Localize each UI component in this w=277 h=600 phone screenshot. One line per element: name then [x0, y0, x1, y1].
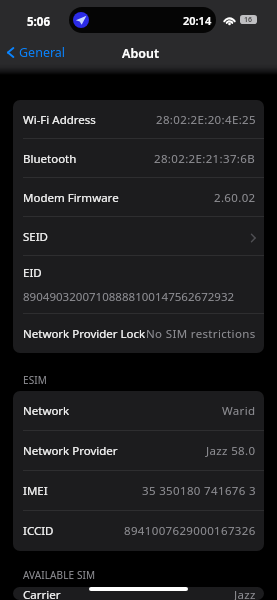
staticText: Modem Firmware	[23, 190, 119, 206]
staticText: 28:02:2E:20:4E:25	[156, 112, 256, 128]
staticText: 5:06	[27, 14, 50, 30]
staticText: 2.60.02	[214, 190, 256, 206]
staticText: Carrier	[23, 587, 61, 600]
button[interactable]: General	[2, 42, 68, 63]
staticText: Wi-Fi Address	[23, 112, 96, 128]
staticText: Network	[23, 403, 70, 419]
staticText: SEID	[23, 229, 49, 245]
button[interactable]: EID	[13, 256, 264, 314]
button[interactable]: Network	[13, 391, 264, 431]
staticText: ESIM	[23, 373, 47, 387]
staticText: Jazz	[234, 587, 256, 600]
button[interactable]: Carrier	[13, 587, 264, 600]
staticText: EID	[23, 265, 42, 281]
button[interactable]: Network Provider Lock	[13, 314, 264, 353]
button[interactable]: Bluetooth	[13, 139, 264, 178]
staticText: 89049032007108888100147562672932	[23, 289, 235, 305]
staticText: Warid	[222, 403, 256, 419]
staticText: 35 350180 741676 3	[142, 483, 256, 499]
staticText: Jazz 58.0	[206, 443, 256, 459]
button[interactable]: Wi-Fi Address	[13, 100, 264, 139]
staticText: No SIM restrictions	[146, 326, 256, 342]
staticText: IMEI	[23, 483, 48, 499]
staticText: 28:02:2E:21:37:6B	[154, 151, 256, 167]
button[interactable]: SEID	[13, 217, 264, 256]
staticText: 20:14	[183, 13, 212, 28]
staticText: Network Provider Lock	[23, 326, 146, 342]
staticText: Bluetooth	[23, 151, 77, 167]
staticText: Network Provider	[23, 443, 118, 459]
staticText: AVAILABLE SIM	[23, 568, 96, 582]
staticText: ICCID	[23, 523, 54, 539]
staticText: 16	[244, 15, 253, 24]
button[interactable]: IMEI	[13, 471, 264, 511]
button[interactable]: Modem Firmware	[13, 178, 264, 217]
staticText: General	[19, 44, 66, 61]
button[interactable]: Network Provider	[13, 431, 264, 471]
button[interactable]: ICCID	[13, 511, 264, 551]
staticText: About	[122, 45, 159, 62]
staticText: 8941007629000167326	[124, 523, 256, 539]
